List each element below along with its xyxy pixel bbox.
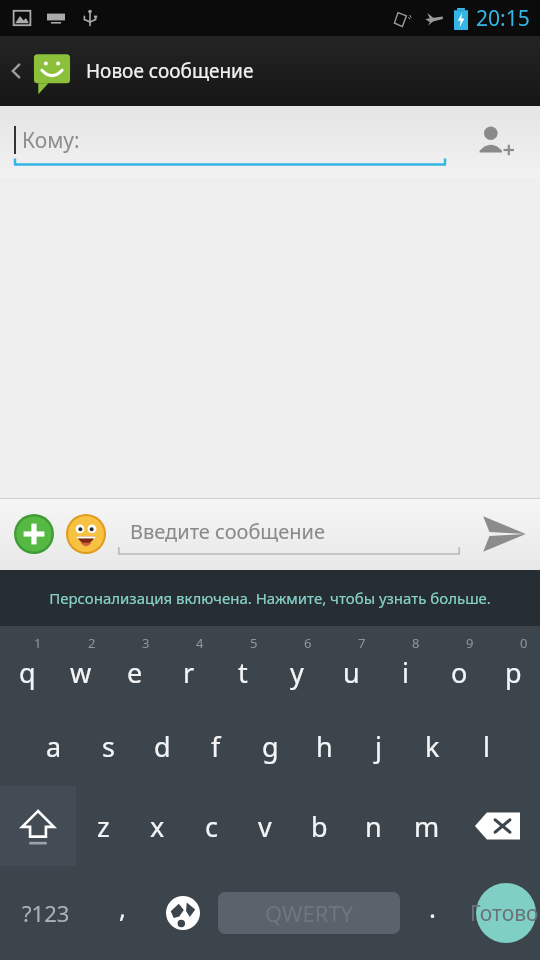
button[interactable]: QWERTY xyxy=(218,892,400,934)
button[interactable]: h xyxy=(297,706,351,786)
button[interactable]: ?123 xyxy=(0,866,92,960)
staticText: s xyxy=(102,728,115,765)
staticText: Персонализация включена. Нажмите, чтобы … xyxy=(49,588,491,608)
button[interactable]: 5 xyxy=(216,626,270,706)
button[interactable]: k xyxy=(405,706,459,786)
staticText: a xyxy=(46,728,62,765)
staticText: t xyxy=(238,654,248,691)
staticText: n xyxy=(365,808,382,845)
button[interactable]: 6 xyxy=(270,626,324,706)
staticText: 6 xyxy=(304,634,312,652)
button[interactable]: Кому: xyxy=(14,118,446,166)
staticText: 5 xyxy=(250,634,258,652)
staticText: e xyxy=(127,654,143,691)
staticText: j xyxy=(375,728,382,765)
button[interactable]: Shift xyxy=(0,786,76,866)
button[interactable]: m xyxy=(400,786,454,866)
button[interactable]: Back xyxy=(0,36,540,106)
staticText: 8 xyxy=(412,634,420,652)
button[interactable]: Add contact xyxy=(468,116,520,168)
button[interactable]: Attach xyxy=(10,510,58,558)
staticText: y xyxy=(290,654,304,691)
staticText: 9 xyxy=(466,634,474,652)
staticText: o xyxy=(451,654,468,691)
staticText: d xyxy=(154,728,171,765)
staticText: Кому: xyxy=(22,126,80,155)
button[interactable]: s xyxy=(81,706,135,786)
staticText: ?123 xyxy=(22,898,70,928)
button[interactable]: a xyxy=(27,706,81,786)
staticText: b xyxy=(311,808,328,845)
button[interactable]: d xyxy=(135,706,189,786)
staticText: . xyxy=(429,890,436,925)
staticText: g xyxy=(262,728,279,765)
staticText: Готово xyxy=(470,899,539,928)
button[interactable]: f xyxy=(189,706,243,786)
staticText: c xyxy=(205,808,218,845)
staticText: p xyxy=(505,654,522,691)
button[interactable]: 4 xyxy=(162,626,216,706)
staticText: l xyxy=(483,728,490,765)
staticText: 4 xyxy=(196,634,204,652)
other: Back xyxy=(6,61,26,81)
staticText: Введите сообщение xyxy=(130,518,326,545)
button[interactable]: Введите сообщение xyxy=(118,511,460,557)
button[interactable]: l xyxy=(459,706,513,786)
staticText: 20:15 xyxy=(476,4,530,33)
button[interactable]: x xyxy=(130,786,184,866)
staticText: 7 xyxy=(358,634,366,652)
button[interactable]: g xyxy=(243,706,297,786)
button[interactable]: 3 xyxy=(108,626,162,706)
staticText: QWERTY xyxy=(265,898,354,928)
staticText: m xyxy=(414,808,440,845)
button[interactable]: 1 xyxy=(0,626,54,706)
staticText: 1 xyxy=(34,634,42,652)
button[interactable]: Change language xyxy=(152,866,214,960)
button[interactable]: 9 xyxy=(432,626,486,706)
button[interactable]: n xyxy=(346,786,400,866)
staticText: k xyxy=(425,728,440,765)
staticText: q xyxy=(19,654,36,691)
staticText: h xyxy=(316,728,333,765)
button[interactable]: 8 xyxy=(378,626,432,706)
button[interactable]: z xyxy=(76,786,130,866)
button[interactable]: Персонализация включена. Нажмите, чтобы … xyxy=(0,570,540,626)
button[interactable]: . xyxy=(404,866,460,960)
button[interactable]: Готово xyxy=(460,866,540,960)
staticText: f xyxy=(211,728,221,765)
button[interactable]: , xyxy=(92,866,152,960)
staticText: , xyxy=(119,890,126,925)
button[interactable]: 7 xyxy=(324,626,378,706)
button[interactable]: Emoji xyxy=(62,510,110,558)
staticText: x xyxy=(150,808,165,845)
staticText: z xyxy=(97,808,110,845)
staticText: i xyxy=(402,654,409,691)
staticText: w xyxy=(70,654,92,691)
button[interactable]: 0 xyxy=(486,626,540,706)
staticText: r xyxy=(183,654,195,691)
button[interactable]: v xyxy=(238,786,292,866)
button[interactable]: Backspace xyxy=(454,786,540,866)
staticText: Новое сообщение xyxy=(86,58,254,84)
button[interactable]: c xyxy=(184,786,238,866)
staticText: 3 xyxy=(142,634,150,652)
staticText: 2 xyxy=(88,634,96,652)
staticText: 0 xyxy=(520,634,528,652)
staticText: v xyxy=(258,808,272,845)
button[interactable]: 2 xyxy=(54,626,108,706)
button[interactable]: b xyxy=(292,786,346,866)
staticText: u xyxy=(343,654,360,691)
button[interactable]: j xyxy=(351,706,405,786)
button[interactable]: Send xyxy=(468,498,540,570)
